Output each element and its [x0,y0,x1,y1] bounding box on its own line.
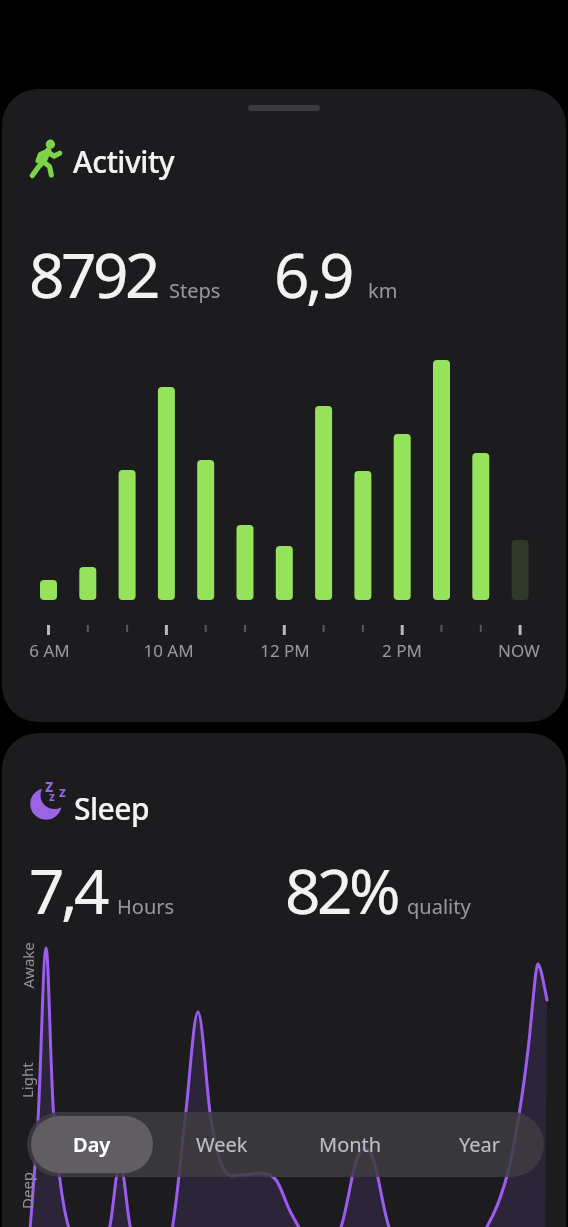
staticText: 10 AM [143,639,194,662]
staticText: 82% [285,848,397,932]
staticText: 8792 [29,232,157,316]
staticText: 2 PM [382,639,422,662]
staticText: 12 PM [260,639,310,662]
button[interactable]: Year [419,1116,540,1173]
staticText: 6,9 [274,232,352,316]
staticText: z [59,782,66,801]
staticText: Hours [117,893,175,920]
staticText: quality [407,893,471,920]
staticText: z [45,774,54,797]
staticText: Week [196,1131,248,1158]
staticText: Sleep [74,788,150,829]
staticText: z [49,788,55,804]
staticText: Month [319,1131,382,1158]
button[interactable]: Week [161,1116,282,1173]
button[interactable]: z [2,733,566,1227]
button[interactable]: Day [31,1116,153,1173]
staticText: Steps [169,277,221,304]
staticText: Deep [17,1171,37,1209]
button[interactable]: Month [290,1116,411,1173]
staticText: 6 AM [29,639,70,662]
staticText: Light [17,1062,37,1098]
staticText: NOW [498,639,540,662]
staticText: 7,4 [29,848,107,932]
button[interactable]: Activity [2,89,566,722]
staticText: Awake [17,941,37,988]
staticText: Day [73,1131,111,1158]
staticText: km [368,277,398,304]
staticText: Activity [73,141,175,182]
staticText: Year [459,1131,501,1158]
